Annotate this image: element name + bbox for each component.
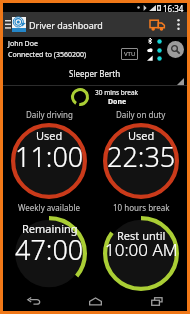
- staticText: Rest until: [117, 228, 166, 243]
- button[interactable]: Vehicle: [144, 12, 170, 37]
- staticText: John Doe: [8, 39, 38, 49]
- staticText: Sleeper Berth: [69, 68, 121, 79]
- staticText: 10:00 AM: [105, 238, 178, 261]
- button[interactable]: Search: [167, 41, 184, 58]
- button[interactable]: Home: [65, 291, 126, 311]
- staticText: Used: [36, 128, 63, 143]
- button[interactable]: Back: [3, 291, 65, 311]
- button[interactable]: 10 hours break: [95, 201, 187, 291]
- button[interactable]: More options: [170, 12, 187, 37]
- staticText: Done: [108, 97, 127, 107]
- staticText: Daily on duty: [116, 109, 166, 120]
- button[interactable]: Open navigation drawer: [3, 12, 12, 37]
- button[interactable]: Recent apps: [126, 291, 187, 311]
- button[interactable]: Daily driving: [3, 108, 95, 201]
- staticText: Driver dashboard: [29, 19, 103, 31]
- staticText: VTU: [124, 50, 136, 58]
- staticText: 10 hours break: [113, 202, 170, 213]
- staticText: Remaining: [22, 221, 78, 236]
- button[interactable]: Sleeper Berth: [3, 62, 187, 85]
- staticText: Connected to (3560200): [8, 50, 87, 60]
- staticText: Used: [128, 128, 155, 143]
- staticText: 22:35: [107, 138, 176, 175]
- staticText: 16:34: [163, 3, 184, 12]
- button[interactable]: Daily on duty: [95, 108, 187, 201]
- staticText: 47:00: [15, 231, 84, 268]
- staticText: 30 mins break: [95, 88, 139, 97]
- staticText: 11:00: [15, 138, 84, 175]
- staticText: Weekly available: [18, 202, 80, 213]
- staticText: Daily driving: [26, 109, 73, 120]
- button[interactable]: Weekly available: [3, 201, 95, 291]
